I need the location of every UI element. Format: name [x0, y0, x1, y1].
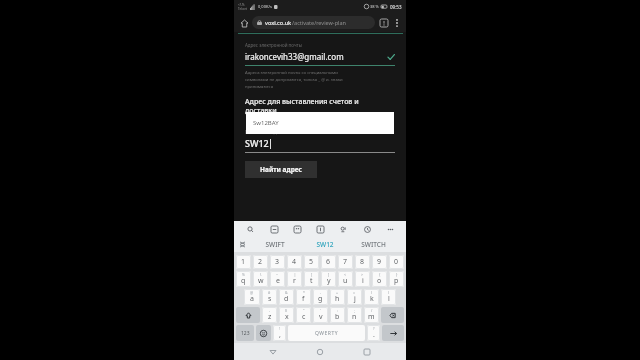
staticText: 123	[241, 330, 250, 337]
staticText: /	[371, 308, 373, 313]
button[interactable]: &	[279, 289, 294, 305]
staticText: y	[327, 276, 331, 286]
button[interactable]: Settings	[360, 222, 374, 236]
button[interactable]: Emoji	[256, 325, 271, 341]
staticText: =	[353, 290, 356, 295]
button[interactable]: 0	[389, 255, 404, 269]
button[interactable]: "	[296, 307, 311, 323]
staticText: }	[396, 272, 398, 277]
button[interactable]: }	[389, 271, 404, 287]
staticText: -	[320, 290, 322, 295]
button[interactable]: ~	[270, 271, 285, 287]
button[interactable]: )	[381, 289, 396, 305]
staticText: v	[319, 312, 323, 322]
staticText: [	[311, 272, 313, 277]
button[interactable]: Home	[238, 17, 250, 29]
staticText: k	[370, 294, 374, 304]
button[interactable]: 123	[236, 325, 254, 341]
button[interactable]: {	[372, 271, 387, 287]
button[interactable]: voxi.co.uk	[252, 16, 375, 29]
button[interactable]: Shift	[236, 307, 260, 323]
button[interactable]: Back	[265, 344, 281, 360]
staticText: %	[242, 272, 245, 277]
staticText: SW12	[316, 240, 334, 249]
staticText: SWITCH	[361, 240, 386, 249]
staticText: 38 %	[370, 4, 379, 9]
staticText: z	[268, 312, 272, 322]
button[interactable]: Handwriting	[336, 222, 350, 236]
button[interactable]: Clipboard	[267, 222, 281, 236]
button[interactable]: Enter	[382, 325, 404, 341]
button[interactable]: [	[304, 271, 319, 287]
staticText: 09:53	[390, 4, 402, 10]
staticText: c	[302, 312, 306, 322]
button[interactable]: ?	[367, 325, 380, 341]
button[interactable]: 4	[287, 255, 302, 269]
button[interactable]: Sw12BAY	[246, 112, 394, 134]
button[interactable]: ;	[347, 307, 362, 323]
button[interactable]: 8	[355, 255, 370, 269]
button[interactable]: /	[364, 307, 379, 323]
button[interactable]: Translate	[313, 222, 327, 236]
button[interactable]: <	[338, 271, 353, 287]
button[interactable]: 7	[338, 255, 353, 269]
button[interactable]: Expand suggestions	[234, 236, 250, 252]
button[interactable]: SWIFT	[250, 236, 300, 252]
button[interactable]: 1	[236, 255, 251, 269]
button[interactable]: 3	[270, 255, 285, 269]
staticText: Почтовый индекс	[245, 129, 284, 135]
button[interactable]: @	[244, 289, 260, 305]
button[interactable]: :	[330, 307, 345, 323]
button[interactable]: Sticker	[290, 222, 304, 236]
button[interactable]: |	[287, 271, 302, 287]
staticText: n	[352, 312, 357, 322]
button[interactable]: %	[236, 271, 251, 287]
staticText: f	[302, 294, 305, 304]
staticText: !	[279, 326, 280, 331]
button[interactable]: 9	[372, 255, 387, 269]
button[interactable]: QWERTY	[288, 325, 365, 341]
button[interactable]: #	[262, 289, 277, 305]
button[interactable]: ]	[321, 271, 336, 287]
button[interactable]: 2	[253, 255, 268, 269]
button[interactable]: -	[262, 307, 277, 323]
button[interactable]: SW12	[300, 236, 349, 252]
button[interactable]: Найти адрес	[245, 161, 317, 178]
button[interactable]: Home	[312, 344, 328, 360]
button[interactable]: (	[364, 289, 379, 305]
button[interactable]: Page info	[378, 17, 390, 29]
staticText: p	[394, 276, 399, 286]
button[interactable]: -	[313, 289, 328, 305]
staticText: |	[294, 272, 296, 277]
button[interactable]: !	[273, 325, 286, 341]
button[interactable]: Backspace	[381, 307, 404, 323]
button[interactable]: Recents	[359, 344, 375, 360]
button[interactable]: SWITCH	[349, 236, 398, 252]
button[interactable]: +	[330, 289, 345, 305]
staticText: .	[373, 330, 375, 340]
staticText: $	[285, 308, 288, 313]
button[interactable]: $	[279, 307, 294, 323]
button[interactable]: >	[355, 271, 370, 287]
button[interactable]: '	[313, 307, 328, 323]
staticText: ;	[354, 308, 355, 313]
button[interactable]: \	[253, 271, 268, 287]
staticText: m	[368, 312, 375, 322]
staticText: ?	[373, 326, 375, 331]
staticText: :	[337, 308, 338, 313]
button[interactable]: *	[296, 289, 311, 305]
button[interactable]: =	[347, 289, 362, 305]
staticText: l	[388, 294, 390, 304]
button[interactable]: More options	[391, 17, 402, 28]
staticText: w	[258, 276, 264, 286]
staticText: Адрес для выставления счетов и доставки	[245, 97, 359, 115]
staticText: 5	[309, 257, 314, 267]
staticText: SWIFT	[265, 240, 285, 249]
button[interactable]: Search	[243, 222, 257, 236]
staticText: >	[361, 272, 364, 277]
staticText: '	[320, 308, 321, 313]
button[interactable]: 6	[321, 255, 336, 269]
button[interactable]: 5	[304, 255, 319, 269]
staticText: 6	[326, 257, 331, 267]
button[interactable]: More	[383, 222, 397, 236]
